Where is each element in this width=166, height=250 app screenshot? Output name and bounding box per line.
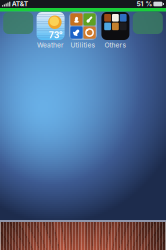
staticText: 51 % <box>136 0 152 8</box>
button[interactable]: Others <box>99 12 132 48</box>
button[interactable]: 73° <box>34 12 67 48</box>
staticText: 73° <box>49 30 63 40</box>
staticText: AT&T <box>12 0 28 8</box>
button[interactable]: Utilities <box>67 12 99 48</box>
staticText: Others <box>104 41 126 49</box>
staticText: Utilities <box>70 41 95 49</box>
staticText: Weather <box>37 41 64 49</box>
button[interactable] <box>132 12 164 48</box>
button[interactable] <box>2 12 34 48</box>
